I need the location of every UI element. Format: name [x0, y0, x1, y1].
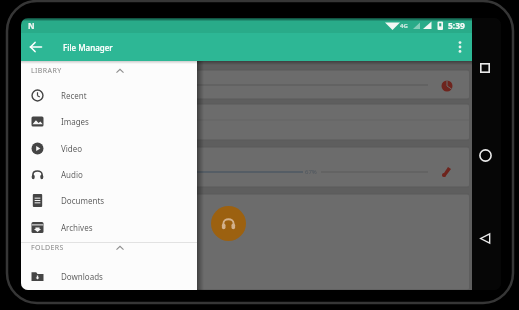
button[interactable]: Recent — [21, 82, 197, 108]
button[interactable]: Archives — [21, 214, 197, 240]
staticText: 67% — [305, 168, 317, 176]
button[interactable]: Video — [21, 135, 197, 161]
button[interactable] — [475, 58, 495, 78]
staticText: Video — [61, 143, 83, 154]
button[interactable] — [475, 228, 495, 248]
staticText: File Manager — [63, 42, 113, 53]
button[interactable]: Documents — [21, 187, 197, 213]
button[interactable]: Downloads — [21, 263, 197, 289]
button[interactable] — [211, 206, 246, 241]
button[interactable]: Images — [21, 108, 197, 134]
staticText: Downloads — [61, 271, 103, 282]
staticText: FOLDERS — [31, 243, 64, 253]
staticText: Audio — [61, 169, 83, 180]
staticText: Documents — [61, 195, 105, 206]
button[interactable]: Audio — [21, 161, 197, 187]
button[interactable] — [26, 37, 46, 57]
staticText: 4G — [400, 22, 408, 30]
staticText: LIBRARY — [31, 66, 62, 76]
staticText: Archives — [61, 222, 93, 233]
staticText: Recent — [61, 90, 87, 101]
staticText: 5:39 — [448, 20, 465, 32]
button[interactable] — [475, 145, 495, 165]
button[interactable] — [450, 37, 469, 57]
staticText: N — [28, 20, 35, 31]
staticText: Images — [61, 116, 89, 127]
